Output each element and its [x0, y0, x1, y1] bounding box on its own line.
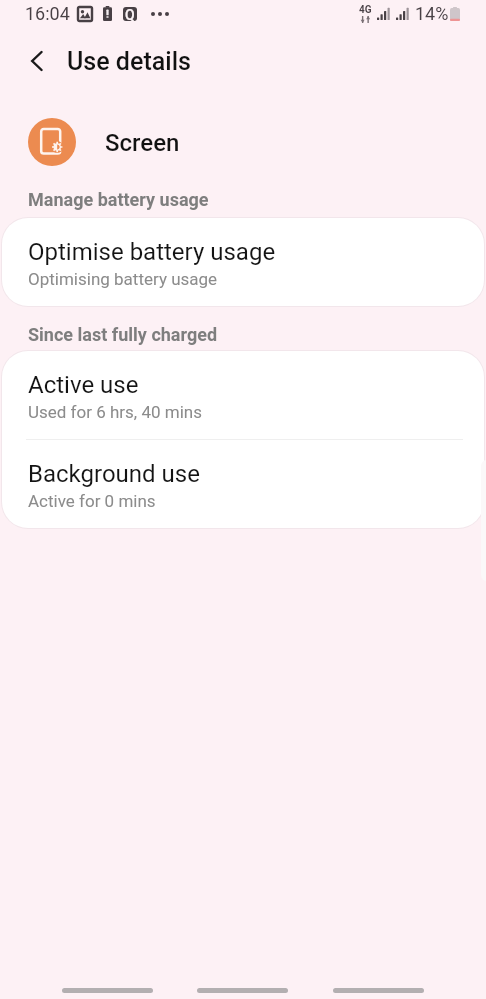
button[interactable]: Recent apps: [62, 988, 153, 993]
button[interactable]: Back: [333, 988, 424, 993]
button[interactable]: Background use: [2, 440, 484, 528]
staticText: 16:04: [25, 3, 70, 24]
staticText: Active for 0 mins: [28, 491, 156, 511]
button[interactable]: Active use: [2, 351, 484, 439]
staticText: Optimise battery usage: [28, 238, 276, 266]
staticText: Use details: [67, 47, 191, 76]
staticText: Optimising battery usage: [28, 269, 218, 289]
staticText: Q: [125, 7, 135, 21]
staticText: Screen: [105, 129, 180, 157]
staticText: Background use: [28, 460, 200, 488]
staticText: Manage battery usage: [28, 189, 209, 210]
button[interactable]: Optimise battery usage: [2, 218, 484, 306]
staticText: Active use: [28, 371, 139, 399]
staticText: 4G: [359, 4, 372, 16]
button[interactable]: Navigate up: [16, 40, 58, 82]
staticText: 14%: [415, 3, 449, 24]
staticText: Since last fully charged: [28, 324, 218, 345]
button[interactable]: Home: [197, 988, 288, 993]
staticText: Used for 6 hrs, 40 mins: [28, 402, 202, 422]
